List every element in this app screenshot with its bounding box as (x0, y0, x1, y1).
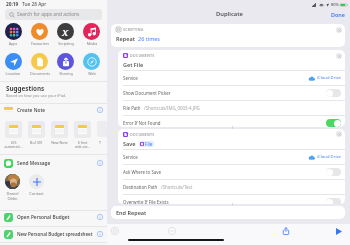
button[interactable] (5, 121, 22, 138)
button[interactable]: Scripting (57, 23, 74, 40)
staticText: Tue 28 Apr (22, 1, 47, 8)
staticText: Sharing (53, 71, 79, 76)
button[interactable] (28, 121, 45, 138)
button[interactable]: Show Document Picker (118, 86, 345, 100)
button[interactable]: Media (83, 23, 100, 40)
staticText: Documents (27, 71, 53, 76)
staticText: /Shortcuts/IMG_0003-4.JPG (144, 105, 200, 111)
staticText: Create Note (17, 107, 97, 114)
button[interactable]: Search for apps and actions (5, 9, 102, 20)
button[interactable]: Location (5, 53, 22, 70)
button[interactable]: Settings (109, 225, 121, 237)
staticText: Based on how you use your iPad. (6, 93, 67, 98)
staticText: Send Message (17, 160, 97, 167)
staticText: Scripting (53, 41, 79, 46)
staticText: Web (79, 71, 105, 76)
staticText: T (99, 140, 101, 145)
button[interactable]: Daniel Oldin (5, 174, 20, 189)
button[interactable]: Comment (166, 225, 178, 237)
button[interactable]: Remove action (336, 27, 342, 33)
staticText: 26 times (138, 35, 161, 42)
staticText: DOCUMENTS (130, 53, 155, 58)
staticText: DOCUMENTS (130, 132, 155, 137)
staticText: Save (123, 140, 136, 147)
button[interactable]: File Path (118, 101, 345, 115)
staticText: Overwrite If File Exists (123, 199, 169, 204)
button[interactable]: Overwrite If File Exists (118, 195, 345, 204)
button[interactable]: New Personal Budget spreadsheet (0, 228, 107, 240)
staticText: Suggestions (6, 84, 45, 93)
staticText: Destination Path (123, 184, 158, 190)
button[interactable]: Toggle (326, 89, 341, 97)
staticText: New Note (49, 140, 70, 145)
staticText: Favourites (27, 41, 53, 46)
staticText: Contact (27, 191, 46, 196)
staticText: 20:19 (6, 1, 19, 8)
staticText: New Personal Budget spreadsheet (17, 231, 97, 237)
staticText: Done (331, 11, 345, 18)
staticText: Show Document Picker (123, 90, 171, 96)
button[interactable]: Remove action (336, 53, 342, 59)
staticText: SCRIPTING (123, 27, 144, 32)
staticText: /Shortcuts/Test (161, 184, 193, 190)
staticText: Search for apps and actions (17, 11, 80, 18)
staticText: Ask Where to Save (123, 169, 161, 175)
staticText: iOS automati... (3, 140, 24, 149)
staticText: File Path (123, 105, 141, 111)
staticText: iCloud Drive (317, 154, 341, 160)
staticText: Service (123, 75, 138, 81)
staticText: End Repeat (116, 209, 147, 216)
button[interactable]: Service (118, 150, 345, 164)
staticText: 6 feet witt-cor... (72, 140, 93, 149)
button[interactable]: Open Personal Budget (0, 211, 107, 223)
staticText: Bu1301 (26, 140, 47, 145)
button[interactable]: Remove action (336, 131, 342, 137)
button[interactable]: Done (326, 9, 350, 20)
staticText: 80% (331, 2, 339, 7)
staticText: iCloud Drive (317, 75, 341, 81)
button[interactable]: Sharing (57, 53, 74, 70)
button[interactable]: Service (118, 71, 345, 85)
button[interactable]: Ask Where to Save (118, 165, 345, 179)
staticText: Location (0, 71, 26, 76)
staticText: Open Personal Budget (17, 214, 97, 221)
button[interactable]: Create Note (0, 104, 107, 116)
button[interactable]: Destination Path (118, 180, 345, 194)
button[interactable] (74, 121, 91, 138)
button[interactable]: Favourites (31, 23, 48, 40)
staticText: x (62, 24, 69, 39)
staticText: File (145, 141, 153, 147)
button[interactable]: Send Message (0, 157, 107, 169)
button[interactable]: Documents (31, 53, 48, 70)
button[interactable]: Toggle (326, 168, 341, 176)
button[interactable]: Toggle (326, 198, 341, 204)
button[interactable]: Run (333, 225, 345, 237)
button[interactable] (51, 121, 68, 138)
staticText: Error If Not Found (123, 120, 161, 126)
button[interactable]: Apps (5, 23, 22, 40)
button[interactable]: File (140, 141, 153, 147)
staticText: Daniel Oldin (4, 191, 21, 201)
button[interactable]: Error If Not Found (118, 116, 345, 127)
button[interactable]: Share (280, 225, 292, 237)
button[interactable]: Add contact (29, 174, 44, 189)
staticText: Duplicate (216, 10, 243, 18)
staticText: Get File (123, 61, 144, 68)
button[interactable]: End Repeat (111, 206, 345, 219)
button[interactable]: Web (83, 53, 100, 70)
staticText: Repeat (116, 35, 135, 42)
staticText: Media (79, 41, 105, 46)
staticText: Service (123, 154, 138, 160)
staticText: Apps (0, 41, 26, 46)
button[interactable]: Toggle (326, 119, 341, 127)
